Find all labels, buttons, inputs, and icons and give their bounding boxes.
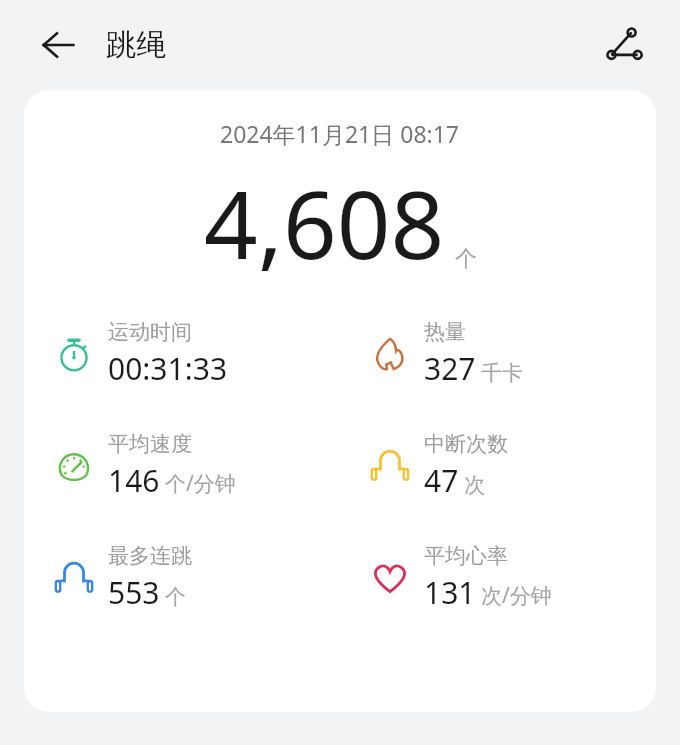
staticText: 运动时间	[108, 319, 192, 345]
staticText: 00:31:33	[108, 348, 228, 389]
button[interactable]: Share	[596, 17, 652, 73]
button[interactable]: 最多连跳	[24, 539, 340, 617]
button[interactable]: 平均速度	[24, 427, 340, 505]
staticText: 131	[424, 572, 476, 613]
staticText: 4,608	[204, 159, 445, 287]
button[interactable]: 中断次数	[340, 427, 656, 505]
staticText: 平均速度	[108, 431, 192, 457]
staticText: 个	[165, 584, 186, 610]
staticText: 个	[455, 245, 477, 273]
staticText: 中断次数	[424, 431, 508, 457]
staticText: 热量	[424, 319, 466, 345]
staticText: 次/分钟	[481, 581, 552, 610]
staticText: 平均心率	[424, 543, 508, 569]
staticText: 47	[424, 460, 459, 501]
staticText: 327	[424, 348, 476, 389]
button[interactable]: 平均心率	[340, 539, 656, 617]
staticText: 千卡	[481, 360, 523, 386]
staticText: 2024年11月21日 08:17	[220, 118, 460, 149]
staticText: 146	[108, 460, 160, 501]
staticText: 最多连跳	[108, 543, 192, 569]
staticText: 次	[464, 472, 485, 498]
staticText: 个/分钟	[165, 469, 236, 498]
button[interactable]: Back	[30, 17, 86, 73]
staticText: 跳绳	[106, 26, 166, 64]
button[interactable]: 运动时间	[24, 315, 340, 393]
button[interactable]: 热量	[340, 315, 656, 393]
staticText: 553	[108, 572, 160, 613]
